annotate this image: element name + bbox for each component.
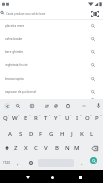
button[interactable]: X <box>21 140 31 155</box>
button[interactable]: Home <box>47 172 58 183</box>
button[interactable]: M <box>72 140 82 155</box>
staticText: P <box>95 114 99 122</box>
button[interactable]: G <box>46 126 56 141</box>
staticText: Q <box>3 114 8 122</box>
button[interactable]: N <box>62 140 72 155</box>
button[interactable]: W <box>10 110 20 125</box>
staticText: placinta mere <box>5 24 25 28</box>
staticText: O <box>85 114 90 122</box>
button[interactable]: bere ghimbir <box>0 45 103 58</box>
staticText: Cauta produse sau cod de bare <box>6 12 46 16</box>
staticText: branza topita <box>5 77 24 81</box>
staticText: E <box>24 114 28 122</box>
button[interactable]: I <box>72 110 82 125</box>
button[interactable]: napoase de pui borsel <box>0 85 103 98</box>
button[interactable]: E <box>21 110 31 125</box>
staticText: 8 <box>80 113 82 116</box>
staticText: F <box>39 130 43 138</box>
staticText: J <box>71 130 73 138</box>
button[interactable]: B <box>52 140 62 155</box>
button[interactable]: inghetata fructe <box>0 58 103 71</box>
staticText: H <box>60 130 65 138</box>
button[interactable]: Shift <box>2 143 12 153</box>
button[interactable]: O <box>82 110 92 125</box>
staticText: W <box>12 114 18 122</box>
button[interactable]: T <box>41 110 51 125</box>
button[interactable]: Y <box>51 110 61 125</box>
staticText: bere ghimbir <box>5 50 24 54</box>
button[interactable]: Theme <box>52 102 60 110</box>
button[interactable]: Emoji <box>26 155 36 170</box>
button[interactable]: R <box>31 110 41 125</box>
staticText: D <box>29 130 34 138</box>
button[interactable]: branza topita <box>0 72 103 85</box>
staticText: Z <box>14 144 18 152</box>
button[interactable]: Search <box>14 102 22 110</box>
staticText: . <box>81 159 83 167</box>
button[interactable]: U <box>62 110 72 125</box>
staticText: C <box>34 144 38 152</box>
button[interactable]: D <box>26 126 36 141</box>
button[interactable]: S <box>16 126 26 141</box>
staticText: 9 <box>90 113 92 116</box>
button[interactable]: C <box>31 140 41 155</box>
staticText: 6 <box>59 113 61 116</box>
staticText: K <box>80 130 84 138</box>
staticText: B <box>55 144 59 152</box>
button[interactable]: Recents <box>75 172 86 183</box>
staticText: L <box>90 130 94 138</box>
button[interactable]: K <box>77 126 87 141</box>
button[interactable]: Clipboard <box>64 102 72 110</box>
button[interactable]: placinta mere <box>0 19 103 32</box>
staticText: V <box>44 144 48 152</box>
button[interactable]: . <box>77 155 86 170</box>
staticText: inghetata fructe <box>5 63 28 67</box>
button[interactable]: V <box>41 140 51 155</box>
button[interactable]: H <box>57 126 67 141</box>
staticText: 0 <box>100 113 102 116</box>
button[interactable]: Voice input <box>94 101 102 109</box>
button[interactable]: A <box>5 126 15 141</box>
staticText: cafea boabe <box>5 37 23 41</box>
button[interactable]: Q <box>0 110 10 125</box>
button[interactable]: F <box>36 126 46 141</box>
staticText: 1 <box>8 113 10 116</box>
staticText: ?123 <box>3 161 10 165</box>
button[interactable]: L <box>87 126 97 141</box>
staticText: R <box>34 114 38 122</box>
button[interactable]: J <box>67 126 77 141</box>
button[interactable]: Scan barcode <box>88 8 102 19</box>
staticText: Y <box>54 114 58 122</box>
button[interactable]: Translate <box>43 102 51 110</box>
staticText: 7 <box>70 113 72 116</box>
button[interactable]: Search <box>90 157 97 164</box>
staticText: napoase de pui borsel <box>5 90 37 94</box>
staticText: A <box>8 130 12 138</box>
staticText: 4 <box>39 113 41 116</box>
button[interactable]: Backspace <box>90 143 100 153</box>
staticText: S <box>19 130 23 138</box>
staticText: 3 <box>29 113 31 116</box>
button[interactable]: Stickers <box>28 102 36 110</box>
staticText: X <box>24 144 28 152</box>
staticText: 2 <box>18 113 20 116</box>
button[interactable]: P <box>92 110 102 125</box>
staticText: T <box>44 114 48 122</box>
button[interactable]: ?123 <box>1 155 12 170</box>
staticText: I <box>76 114 79 122</box>
button[interactable]: Z <box>11 140 21 155</box>
staticText: 5 <box>49 113 51 116</box>
staticText: G <box>49 130 54 138</box>
button[interactable]: Back <box>22 172 33 183</box>
button[interactable]: Collapse toolbar <box>4 103 10 109</box>
button[interactable]: cafea boabe <box>0 32 103 45</box>
staticText: U <box>65 114 70 122</box>
button[interactable]: More options <box>80 102 88 110</box>
staticText: M <box>74 144 80 152</box>
button[interactable]: , <box>13 155 23 170</box>
staticText: N <box>65 144 70 152</box>
staticText: , <box>17 159 19 167</box>
